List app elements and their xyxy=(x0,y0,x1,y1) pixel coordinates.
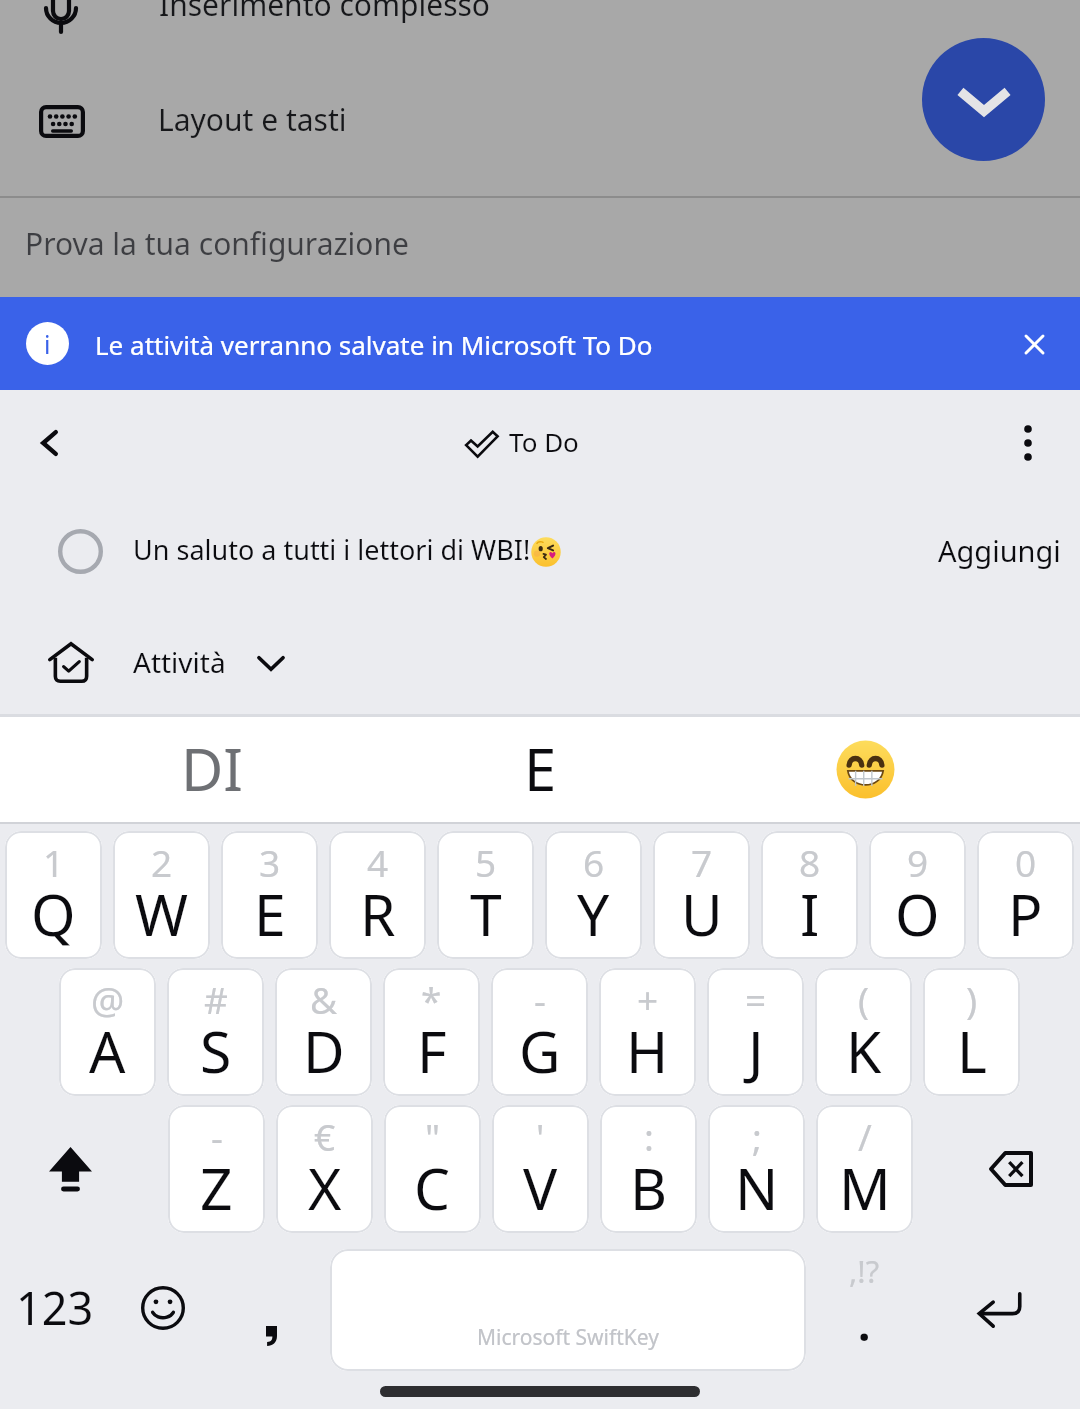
staticText: Y xyxy=(577,875,610,953)
staticText: & xyxy=(310,974,338,1024)
button[interactable]: 5 xyxy=(437,831,534,959)
staticText: i xyxy=(44,327,51,361)
staticText: ' xyxy=(536,1111,545,1161)
staticText: Layout e tasti xyxy=(158,99,347,140)
staticText: U xyxy=(681,875,723,953)
staticText: 3 xyxy=(259,837,281,887)
button[interactable]: E xyxy=(360,717,720,824)
staticText: 9 xyxy=(907,837,929,887)
button[interactable]: i xyxy=(0,297,1080,390)
staticText: To Do xyxy=(509,424,579,459)
button[interactable]: Attività xyxy=(0,609,1080,709)
button[interactable]: Shift xyxy=(0,1105,168,1233)
staticText: 8 xyxy=(799,837,821,887)
button[interactable]: Aggiungi xyxy=(938,531,1061,570)
staticText: 2 xyxy=(151,837,173,887)
button[interactable]: DI xyxy=(0,717,360,824)
staticText: F xyxy=(417,1012,447,1090)
button[interactable]: 1 xyxy=(5,831,102,959)
button[interactable]: ) xyxy=(923,968,1020,1096)
staticText: ; xyxy=(752,1111,762,1161)
staticText: Le attività verranno salvate in Microsof… xyxy=(95,327,653,362)
staticText: Un saluto a tutti i lettori di WBI! xyxy=(133,531,531,568)
staticText: Inserimento complesso xyxy=(159,0,491,25)
button[interactable]: # xyxy=(167,968,264,1096)
staticText: 7 xyxy=(691,837,713,887)
staticText: . xyxy=(858,1294,871,1354)
button[interactable]: / xyxy=(816,1105,913,1233)
staticText: @ xyxy=(91,974,125,1024)
button[interactable]: + xyxy=(599,968,696,1096)
button[interactable]: @ xyxy=(59,968,156,1096)
button[interactable]: 9 xyxy=(869,831,966,959)
staticText: Microsoft SwiftKey xyxy=(477,1323,659,1352)
button[interactable]: & xyxy=(275,968,372,1096)
staticText: Aggiungi xyxy=(938,531,1061,570)
button[interactable]: Backspace xyxy=(913,1105,1080,1233)
staticText: D xyxy=(303,1012,345,1090)
staticText: / xyxy=(858,1111,872,1161)
button[interactable]: 3 xyxy=(221,831,318,959)
button[interactable]: ; xyxy=(708,1105,805,1233)
staticText: I xyxy=(800,875,820,953)
button[interactable]: Inserimento complesso xyxy=(0,0,1080,58)
button[interactable]: 0 xyxy=(977,831,1074,959)
button[interactable]: ,!? xyxy=(806,1246,924,1371)
button[interactable]: Emoji suggestion xyxy=(720,717,1080,824)
button[interactable]: 6 xyxy=(545,831,642,959)
staticText: Z xyxy=(200,1149,233,1227)
button[interactable]: ' xyxy=(492,1105,589,1233)
staticText: R xyxy=(360,875,396,953)
staticText: ,!? xyxy=(849,1250,880,1292)
staticText: G xyxy=(519,1012,561,1090)
staticText: J xyxy=(748,1012,764,1090)
staticText: " xyxy=(425,1111,441,1161)
staticText: ) xyxy=(966,974,978,1024)
button[interactable]: Emoji keyboard xyxy=(112,1246,220,1371)
staticText: C xyxy=(414,1149,451,1227)
button[interactable]: Un saluto a tutti i lettori di WBI! xyxy=(0,496,1080,609)
staticText: € xyxy=(314,1111,336,1161)
button[interactable]: Collapse keyboard settings xyxy=(922,38,1045,161)
button[interactable]: " xyxy=(384,1105,481,1233)
staticText: S xyxy=(200,1012,232,1090)
staticText: + xyxy=(637,974,659,1024)
staticText: * xyxy=(421,974,442,1024)
staticText: H xyxy=(626,1012,669,1090)
button[interactable]: Close xyxy=(998,308,1070,380)
button[interactable]: Enter xyxy=(924,1246,1080,1371)
staticText: O xyxy=(895,875,940,953)
button[interactable]: 123 xyxy=(0,1246,112,1371)
button[interactable]: € xyxy=(276,1105,373,1233)
staticText: 5 xyxy=(475,837,497,887)
button[interactable]: 4 xyxy=(329,831,426,959)
button[interactable]: Microsoft SwiftKey xyxy=(330,1249,806,1371)
button[interactable]: = xyxy=(707,968,804,1096)
staticText: Prova la tua configurazione xyxy=(25,223,409,264)
staticText: N xyxy=(735,1149,779,1227)
staticText: V xyxy=(523,1149,558,1227)
button[interactable]: Layout e tasti xyxy=(0,76,1080,172)
button[interactable]: - xyxy=(168,1105,265,1233)
staticText: Q xyxy=(31,875,76,953)
staticText: 4 xyxy=(367,837,389,887)
button[interactable]: 2 xyxy=(113,831,210,959)
staticText: DI xyxy=(181,729,244,808)
staticText: : xyxy=(644,1111,654,1161)
button[interactable]: 7 xyxy=(653,831,750,959)
staticText: W xyxy=(135,875,189,953)
staticText: 6 xyxy=(583,837,605,887)
button[interactable]: ( xyxy=(815,968,912,1096)
button[interactable]: : xyxy=(600,1105,697,1233)
button[interactable]: More options xyxy=(998,413,1058,473)
staticText: Attività xyxy=(133,643,226,681)
button[interactable] xyxy=(220,1246,330,1371)
button[interactable]: * xyxy=(383,968,480,1096)
button[interactable]: - xyxy=(491,968,588,1096)
staticText: 0 xyxy=(1015,837,1037,887)
staticText: K xyxy=(846,1012,882,1090)
button[interactable]: 8 xyxy=(761,831,858,959)
staticText: P xyxy=(1008,875,1043,953)
staticText: - xyxy=(211,1111,223,1161)
button[interactable]: Back xyxy=(16,410,82,476)
